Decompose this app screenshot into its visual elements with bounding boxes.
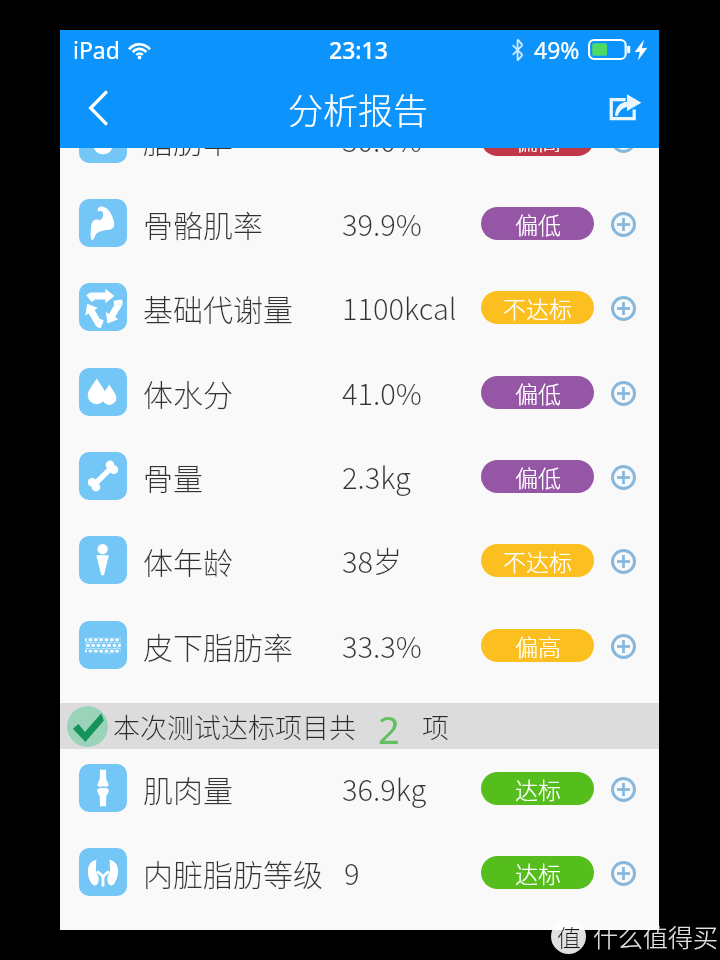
button[interactable]: 骨骼肌率 [60,181,659,265]
staticText: 本次测试达标项目共 [113,707,356,746]
staticText: 偏低 [515,460,561,493]
staticText: iPad [73,34,120,65]
staticText: 偏低 [515,207,561,240]
staticText: 36.9kg [342,767,427,809]
button[interactable]: Add [608,125,638,155]
staticText: 23:13 [329,34,388,65]
button[interactable]: 偏高 [481,123,594,156]
staticText: 达标 [515,856,561,889]
staticText: 分析报告 [288,83,429,134]
staticText: 41.0% [342,371,422,413]
button[interactable]: 体年龄 [60,518,659,602]
staticText: 38岁 [342,539,403,581]
button[interactable]: Add [608,546,638,576]
button[interactable]: 偏低 [481,376,594,409]
button[interactable]: Add [608,293,638,323]
staticText: 内脏脂肪等级 [143,851,323,894]
staticText: 偏低 [515,376,561,409]
staticText: 不达标 [503,544,572,577]
staticText: 肌肉量 [143,767,233,810]
button[interactable]: 达标 [481,856,594,889]
staticText: 2 [378,703,400,749]
button[interactable]: Add [608,209,638,239]
button[interactable]: 基础代谢量 [60,265,659,349]
button[interactable]: Back [60,68,138,148]
staticText: 脂肪率 [143,118,233,161]
button[interactable]: 骨量 [60,434,659,518]
staticText: 不达标 [503,291,572,324]
staticText: 偏高 [515,123,561,156]
button[interactable]: 偏高 [481,629,594,662]
button[interactable]: 脂肪率 [60,97,659,181]
staticText: 偏高 [515,629,561,662]
staticText: 39.9% [342,202,422,244]
staticText: 达标 [515,772,561,805]
staticText: 30.0% [342,118,422,160]
button[interactable]: 肌肉量 [60,746,659,830]
staticText: 什么值得买 [593,918,719,954]
staticText: 骨量 [143,455,203,498]
button[interactable]: 内脏脂肪等级 [60,830,659,914]
staticText: 9 [344,851,360,893]
staticText: 49% [534,34,580,65]
button[interactable]: 体水分 [60,350,659,434]
button[interactable]: Add [608,858,638,888]
button[interactable]: 皮下脂肪率 [60,603,659,687]
staticText: 皮下脂肪率 [143,624,293,667]
button[interactable]: 不达标 [481,291,594,324]
staticText: 体水分 [143,371,233,414]
staticText: 基础代谢量 [143,286,293,329]
staticText: 体年龄 [143,539,233,582]
button[interactable]: Share [585,68,659,148]
staticText: 33.3% [342,624,422,666]
button[interactable]: 不达标 [481,544,594,577]
staticText: 1100kcal [342,286,457,328]
staticText: 2.3kg [342,455,411,497]
staticText: 值 [557,919,581,954]
button[interactable]: 偏低 [481,207,594,240]
button[interactable]: 偏低 [481,460,594,493]
staticText: 骨骼肌率 [143,202,263,245]
staticText: 项 [422,707,449,746]
button[interactable]: Add [608,631,638,661]
button[interactable]: Add [608,774,638,804]
button[interactable]: 达标 [481,772,594,805]
button[interactable]: Add [608,378,638,408]
button[interactable]: Add [608,462,638,492]
